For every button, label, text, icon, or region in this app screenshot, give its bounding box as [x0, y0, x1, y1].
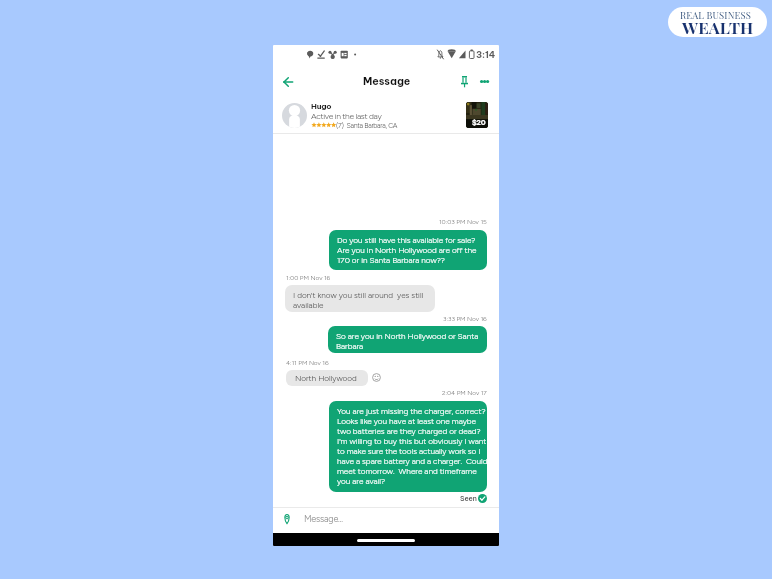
button[interactable]: Send location: [280, 512, 293, 525]
staticText: Do you still have this available for sal…: [337, 235, 477, 265]
staticText: 10:03 PM Nov 15: [439, 218, 487, 226]
button[interactable]: Pin conversation: [457, 74, 471, 88]
button[interactable]: Real Business Wealth: [668, 7, 767, 37]
staticText: (7) Santa Barbara, CA: [336, 121, 398, 129]
button[interactable]: North Hollywood: [286, 370, 368, 386]
button[interactable]: So are you in North Hollywood or Santa B…: [328, 326, 487, 353]
button[interactable]: You are just missing the charger, correc…: [329, 401, 487, 492]
staticText: Message...: [304, 513, 343, 524]
staticText: Active in the last day: [311, 111, 382, 121]
staticText: Message: [363, 74, 411, 87]
staticText: WEALTH: [682, 16, 754, 37]
button[interactable]: Add reaction: [372, 373, 381, 382]
staticText: North Hollywood: [295, 373, 357, 383]
staticText: 1:00 PM Nov 16: [286, 274, 331, 282]
staticText: $20: [472, 118, 486, 127]
staticText: So are you in North Hollywood or Santa B…: [336, 331, 479, 351]
staticText: 3:14: [476, 49, 496, 60]
staticText: REAL BUSINESS: [680, 9, 752, 22]
staticText: You are just missing the charger, correc…: [337, 406, 487, 486]
button[interactable]: Back: [277, 71, 299, 93]
staticText: 2:04 PM Nov 17: [442, 389, 487, 397]
button[interactable]: More options: [478, 75, 491, 88]
button[interactable]: Do you still have this available for sal…: [329, 230, 487, 270]
staticText: I don't know you still around yes still …: [293, 290, 424, 310]
button[interactable]: Listing photo, $20: [466, 102, 488, 128]
staticText: 3:33 PM Nov 16: [443, 315, 487, 323]
staticText: Seen: [460, 494, 477, 503]
button[interactable]: Hugo: [273, 97, 499, 135]
staticText: Hugo: [311, 101, 332, 111]
staticText: 4:11 PM Nov 16: [286, 359, 329, 367]
button[interactable]: I don't know you still around yes still …: [285, 285, 435, 312]
